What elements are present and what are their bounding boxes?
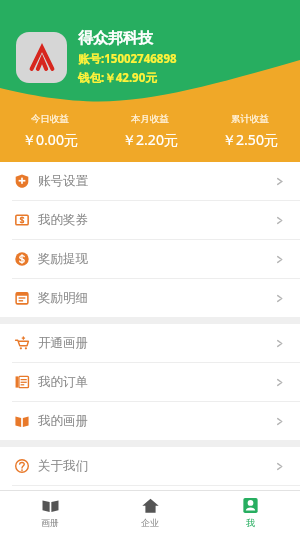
staticText: 本月收益 (131, 113, 169, 125)
staticText: ￥2.50元 (222, 130, 278, 149)
button[interactable]: 我的订单 (0, 363, 300, 401)
staticText: 奖励明细 (38, 290, 88, 306)
button[interactable]: 开通画册 (0, 324, 300, 362)
staticText: 我 (246, 517, 255, 528)
staticText: 关于我们 (38, 458, 88, 474)
button[interactable]: 累计收益 (200, 113, 300, 149)
staticText: 账号:15002746898 (78, 51, 177, 67)
button[interactable]: 我 (200, 491, 300, 533)
button[interactable]: 画册 (0, 491, 100, 533)
button[interactable]: 企业 (100, 491, 200, 533)
button[interactable]: 本月收益 (100, 113, 200, 149)
button[interactable]: 奖励明细 (0, 279, 300, 317)
button[interactable]: 账号设置 (0, 162, 300, 200)
staticText: 我的奖券 (38, 212, 88, 228)
button[interactable]: 今日收益 (0, 113, 100, 149)
staticText: 我的画册 (38, 413, 88, 429)
staticText: 钱包:￥42.90元 (78, 70, 157, 86)
button[interactable]: 我的画册 (0, 402, 300, 440)
staticText: 开通画册 (38, 335, 88, 351)
staticText: ￥0.00元 (22, 130, 78, 149)
staticText: 企业 (141, 517, 159, 528)
staticText: 得众邦科技 (78, 29, 153, 48)
button[interactable]: 奖励提现 (0, 240, 300, 278)
staticText: 画册 (41, 517, 59, 528)
staticText: 今日收益 (31, 113, 69, 125)
button[interactable]: 关于我们 (0, 447, 300, 485)
staticText: ￥2.20元 (122, 130, 178, 149)
staticText: 累计收益 (231, 113, 269, 125)
staticText: 奖励提现 (38, 251, 88, 267)
button[interactable]: App logo (16, 32, 67, 83)
staticText: 我的订单 (38, 374, 88, 390)
button[interactable]: 我的奖券 (0, 201, 300, 239)
staticText: 账号设置 (38, 173, 88, 189)
